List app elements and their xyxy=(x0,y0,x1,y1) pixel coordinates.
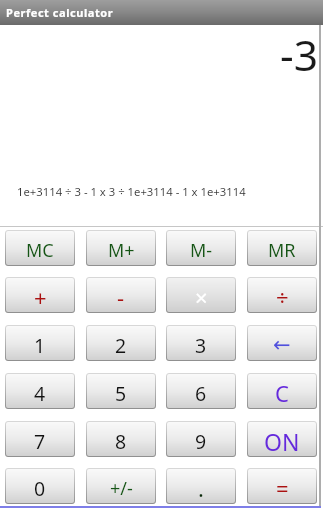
staticText: C xyxy=(275,378,289,408)
button[interactable]: × xyxy=(166,277,236,313)
button[interactable]: C xyxy=(247,373,317,409)
button[interactable]: 8 xyxy=(86,421,156,457)
staticText: - xyxy=(117,282,125,312)
button[interactable]: 3 xyxy=(166,325,236,361)
staticText: . xyxy=(198,473,204,503)
button[interactable]: 5 xyxy=(86,373,156,409)
button[interactable]: 7 xyxy=(5,421,75,457)
staticText: ← xyxy=(273,333,291,357)
button[interactable]: . xyxy=(166,468,236,504)
button[interactable]: ÷ xyxy=(247,277,317,313)
button[interactable]: 4 xyxy=(5,373,75,409)
staticText: 3 xyxy=(195,332,207,359)
button[interactable]: ← xyxy=(247,325,317,361)
staticText: M- xyxy=(190,238,213,263)
staticText: +/- xyxy=(110,476,133,501)
button[interactable]: 6 xyxy=(166,373,236,409)
staticText: 2 xyxy=(115,332,127,359)
staticText: 4 xyxy=(34,380,46,407)
button[interactable]: 1 xyxy=(5,325,75,361)
staticText: 9 xyxy=(195,428,207,455)
button[interactable]: 9 xyxy=(166,421,236,457)
staticText: 5 xyxy=(115,380,127,407)
button[interactable]: M+ xyxy=(86,230,156,266)
staticText: ON xyxy=(264,426,300,457)
staticText: MC xyxy=(26,238,54,263)
staticText: MR xyxy=(268,238,296,263)
staticText: 0 xyxy=(34,475,46,502)
staticText: ÷ xyxy=(276,282,289,312)
staticText: 6 xyxy=(195,380,207,407)
button[interactable]: MR xyxy=(247,230,317,266)
button[interactable]: +/- xyxy=(86,468,156,504)
staticText: 1 xyxy=(34,332,46,359)
staticText: 8 xyxy=(115,428,127,455)
staticText: + xyxy=(34,282,47,312)
button[interactable]: 2 xyxy=(86,325,156,361)
staticText: -3 xyxy=(280,26,318,84)
button[interactable]: M- xyxy=(166,230,236,266)
staticText: = xyxy=(276,473,289,503)
button[interactable]: ON xyxy=(247,421,317,457)
button[interactable]: + xyxy=(5,277,75,313)
button[interactable]: - xyxy=(86,277,156,313)
button[interactable]: MC xyxy=(5,230,75,266)
staticText: 1e+3114 ÷ 3 - 1 x 3 ÷ 1e+3114 - 1 x 1e+3… xyxy=(17,184,246,199)
staticText: M+ xyxy=(108,238,135,263)
staticText: 7 xyxy=(34,428,46,455)
button[interactable]: = xyxy=(247,468,317,504)
staticText: × xyxy=(195,282,208,312)
staticText: Perfect calculator xyxy=(6,5,114,20)
button[interactable]: 0 xyxy=(5,468,75,504)
